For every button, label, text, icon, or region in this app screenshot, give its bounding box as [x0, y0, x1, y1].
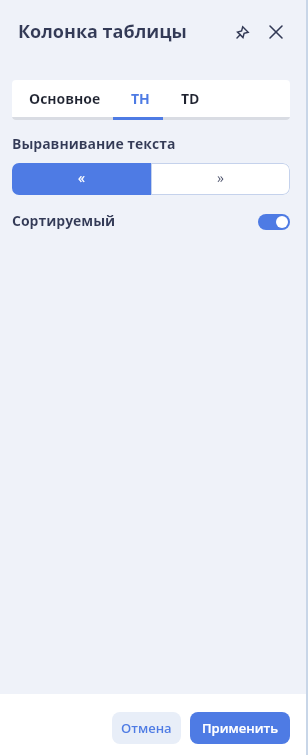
staticText: Основное: [29, 89, 101, 108]
button[interactable]: »: [151, 163, 290, 195]
button[interactable]: Основное: [12, 80, 118, 117]
button[interactable]: Sortable toggle: [258, 214, 290, 230]
button[interactable]: Pin: [227, 17, 257, 47]
staticText: Применить: [202, 719, 278, 737]
staticText: Выравнивание текста: [12, 134, 176, 153]
staticText: »: [217, 168, 224, 187]
staticText: TH: [131, 89, 150, 108]
button[interactable]: TH: [118, 80, 163, 117]
button[interactable]: «: [12, 163, 151, 195]
staticText: «: [78, 168, 85, 187]
button[interactable]: Применить: [190, 712, 290, 744]
button[interactable]: Close: [261, 17, 291, 47]
button[interactable]: TD: [163, 80, 218, 117]
staticText: Сортируемый: [12, 211, 116, 230]
button[interactable]: Отмена: [112, 712, 181, 744]
staticText: Отмена: [121, 719, 172, 737]
staticText: Колонка таблицы: [18, 19, 187, 44]
staticText: TD: [181, 89, 200, 108]
